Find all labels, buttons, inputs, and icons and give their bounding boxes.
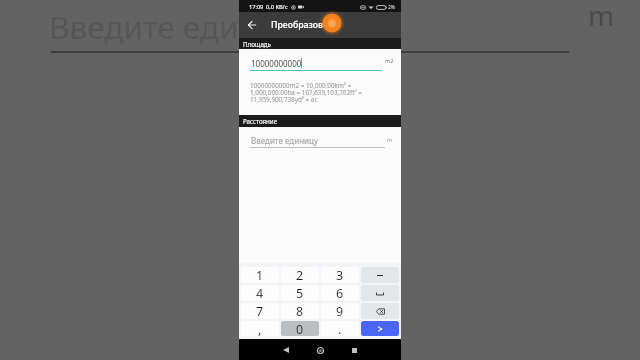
staticText: Площадь xyxy=(243,40,271,48)
button[interactable]: , xyxy=(241,321,279,336)
staticText: 10000000000 xyxy=(251,58,302,69)
button[interactable]: 3 xyxy=(321,267,359,283)
staticText: 2% xyxy=(388,4,396,11)
staticText: 17:09 xyxy=(249,3,264,11)
staticText: 10000000000m2 = 10,000.00km² = 1,000,000… xyxy=(250,81,362,104)
button[interactable]: backspace xyxy=(361,303,399,319)
button[interactable]: 6 xyxy=(321,285,359,301)
button[interactable]: 4 xyxy=(241,285,279,301)
staticText: 1 xyxy=(256,267,264,283)
button[interactable]: Home xyxy=(311,341,329,359)
button[interactable]: . xyxy=(321,321,359,336)
staticText: Введите единицу xyxy=(251,135,318,146)
staticText: 4 xyxy=(256,285,264,301)
button[interactable]: 9 xyxy=(321,303,359,319)
button[interactable]: minus xyxy=(361,267,399,283)
staticText: 0 xyxy=(296,321,304,336)
button[interactable]: 1 xyxy=(241,267,279,283)
staticText: 3 xyxy=(336,267,344,283)
staticText: m xyxy=(588,0,615,34)
staticText: 2 xyxy=(296,267,304,283)
button[interactable]: Back xyxy=(239,12,265,38)
staticText: Преобразов xyxy=(271,19,323,31)
button[interactable]: 8 xyxy=(281,303,319,319)
staticText: , xyxy=(258,321,262,336)
button[interactable]: Back xyxy=(277,341,295,359)
staticText: 5 xyxy=(296,285,304,301)
staticText: 6 xyxy=(336,285,344,301)
staticText: m2 xyxy=(385,57,394,65)
staticText: 9 xyxy=(336,303,344,319)
button[interactable]: 5 xyxy=(281,285,319,301)
staticText: . xyxy=(338,321,342,336)
staticText: Введите еди xyxy=(49,5,239,48)
staticText: 7 xyxy=(256,303,264,319)
staticText: 0,0 KB/c xyxy=(266,3,288,11)
staticText: m xyxy=(387,136,393,143)
staticText: Расстояние xyxy=(243,117,278,125)
button[interactable]: Enter xyxy=(361,321,399,336)
button[interactable]: 7 xyxy=(241,303,279,319)
button[interactable]: 2 xyxy=(281,267,319,283)
button[interactable]: 0 xyxy=(281,321,319,336)
button[interactable]: Recent apps xyxy=(345,341,363,359)
button[interactable]: space xyxy=(361,285,399,301)
staticText: 8 xyxy=(296,303,304,319)
